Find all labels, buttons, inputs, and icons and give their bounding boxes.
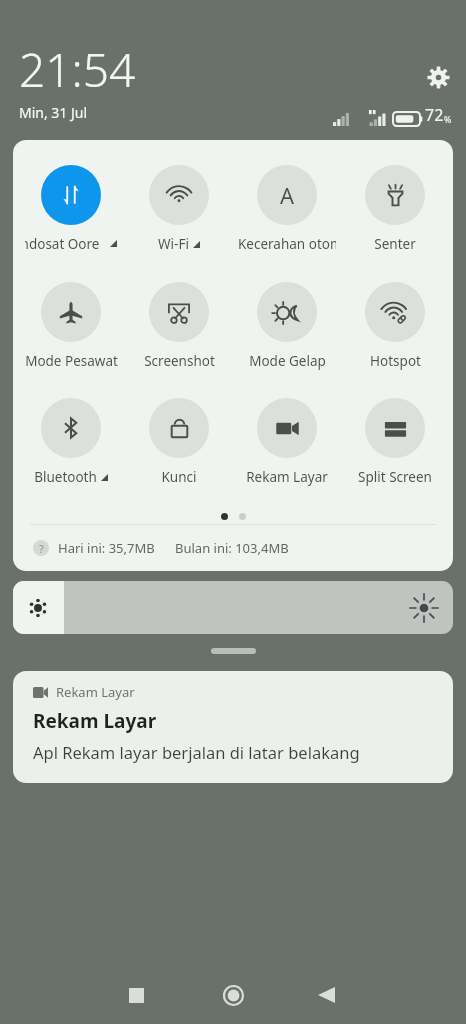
button[interactable]: Recents (106, 966, 166, 1024)
staticText: Mode Gelap (249, 352, 326, 370)
button[interactable]: Home (203, 966, 263, 1024)
button[interactable]: Rekam Layar (237, 398, 337, 486)
staticText: % (444, 113, 452, 125)
button[interactable]: Settings (422, 61, 454, 93)
button[interactable]: Indosat Ooredoo (21, 165, 121, 253)
staticText: Rekam Layar (56, 683, 135, 701)
button[interactable]: Bluetooth (21, 398, 121, 486)
staticText: ? (39, 541, 44, 556)
staticText: Hari ini: 35,7MB (58, 539, 155, 557)
button[interactable] (13, 581, 453, 634)
button[interactable]: Back (296, 966, 356, 1024)
staticText: Indosat Ooredoo (25, 235, 100, 253)
button[interactable]: Senter (345, 165, 445, 253)
button[interactable]: Hotspot (345, 282, 445, 370)
staticText: Screenshot (144, 352, 215, 370)
staticText: Wi-Fi (158, 235, 189, 253)
staticText: Bulan ini: 103,4MB (175, 539, 289, 557)
staticText: Kunci (161, 468, 197, 486)
staticText: Min, 31 Jul (19, 103, 88, 122)
button[interactable]: Mode Gelap (237, 282, 337, 370)
button[interactable]: Split Screen (345, 398, 445, 486)
staticText: Bluetooth (34, 468, 97, 486)
button[interactable]: A (237, 165, 337, 253)
staticText: Split Screen (358, 468, 432, 486)
staticText: Kecerahan otomatis (238, 235, 336, 253)
staticText: A (280, 180, 295, 210)
staticText: Hotspot (370, 352, 421, 370)
staticText: Rekam Layar (246, 468, 328, 486)
staticText: Senter (374, 235, 416, 253)
button[interactable]: Screenshot (129, 282, 229, 370)
button[interactable]: Wi-Fi (129, 165, 229, 253)
staticText: 72 (425, 104, 444, 126)
button[interactable]: Rekam Layar (13, 671, 453, 783)
staticText: 21:54 (19, 38, 136, 101)
staticText: Mode Pesawat (25, 352, 118, 370)
staticText: Apl Rekam layar berjalan di latar belaka… (33, 741, 360, 763)
button[interactable]: Kunci (129, 398, 229, 486)
staticText: Rekam Layar (33, 708, 157, 734)
button[interactable]: Mode Pesawat (21, 282, 121, 370)
